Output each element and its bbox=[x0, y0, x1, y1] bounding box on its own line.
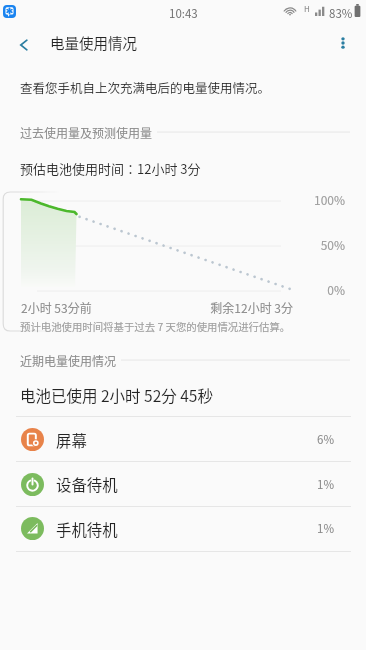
staticText: 预计电池使用时间将基于过去 7 天您的使用情况进行估算。 bbox=[20, 319, 291, 334]
staticText: 过去使用量及预测使用量 bbox=[20, 124, 153, 141]
staticText: 10:43 bbox=[169, 5, 198, 22]
button[interactable] bbox=[0, 417, 366, 462]
staticText: 剩余12小时 3分 bbox=[180, 299, 293, 316]
button[interactable] bbox=[0, 462, 366, 507]
staticText: H bbox=[304, 3, 310, 15]
staticText: 屏幕 bbox=[56, 429, 87, 451]
staticText: 100% bbox=[305, 191, 345, 208]
staticText: 查看您手机自上次充满电后的电量使用情况。 bbox=[20, 78, 271, 96]
staticText: 83% bbox=[329, 5, 353, 22]
staticText: 1% bbox=[290, 476, 334, 493]
staticText: 1% bbox=[290, 520, 334, 537]
staticText: 设备待机 bbox=[56, 473, 118, 495]
staticText: 手机待机 bbox=[56, 518, 118, 540]
staticText: 电量使用情况 bbox=[50, 32, 137, 53]
staticText: 0% bbox=[305, 281, 345, 298]
staticText: 6% bbox=[290, 431, 334, 448]
staticText: 50% bbox=[305, 236, 345, 253]
staticText: 2小时 53分前 bbox=[21, 299, 92, 316]
button[interactable]: Back bbox=[4, 25, 44, 65]
staticText: 电池已使用 2小时 52分 45秒 bbox=[20, 384, 213, 406]
staticText: 预估电池使用时间：12小时 3分 bbox=[20, 159, 201, 178]
button[interactable] bbox=[0, 506, 366, 551]
staticText: 近期电量使用情况 bbox=[20, 352, 117, 369]
button[interactable]: More options bbox=[323, 23, 363, 63]
